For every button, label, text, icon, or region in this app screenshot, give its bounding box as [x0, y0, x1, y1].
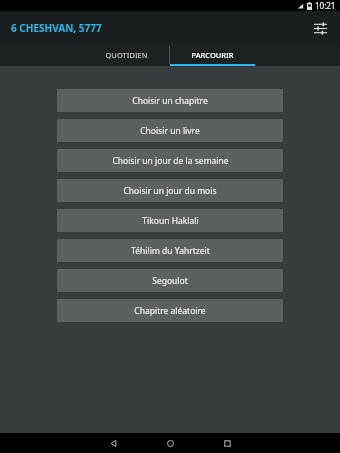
button[interactable]: Home — [142, 433, 199, 453]
staticText: Segoulot — [152, 275, 188, 287]
button[interactable]: Choisir un livre — [57, 119, 283, 142]
button[interactable]: Téhilim du Yahrtzeit — [57, 239, 283, 262]
staticText: Choisir un jour du mois — [123, 185, 217, 197]
button[interactable]: Back — [85, 433, 142, 453]
button[interactable]: Choisir un jour de la semaine — [57, 149, 283, 172]
button[interactable]: Segoulot — [57, 269, 283, 292]
button[interactable]: Settings — [307, 15, 333, 41]
staticText: PARCOURIR — [191, 50, 234, 60]
button[interactable]: QUOTIDIEN — [84, 44, 169, 66]
staticText: Choisir un livre — [140, 125, 200, 137]
button[interactable]: Recents — [199, 433, 256, 453]
button[interactable]: Tikoun Haklali — [57, 209, 283, 232]
staticText: 10:21 — [315, 0, 336, 11]
staticText: Chapitre aléatoire — [134, 305, 206, 317]
staticText: Choisir un chapitre — [132, 95, 208, 107]
staticText: 6 CHESHVAN, 5777 — [11, 21, 102, 35]
staticText: Choisir un jour de la semaine — [112, 155, 229, 167]
button[interactable]: Choisir un jour du mois — [57, 179, 283, 202]
staticText: Tikoun Haklali — [142, 215, 199, 227]
button[interactable]: Choisir un chapitre — [57, 89, 283, 112]
button[interactable]: PARCOURIR — [170, 44, 255, 66]
staticText: Téhilim du Yahrtzeit — [131, 245, 210, 257]
button[interactable]: Chapitre aléatoire — [57, 299, 283, 322]
staticText: QUOTIDIEN — [105, 50, 148, 60]
